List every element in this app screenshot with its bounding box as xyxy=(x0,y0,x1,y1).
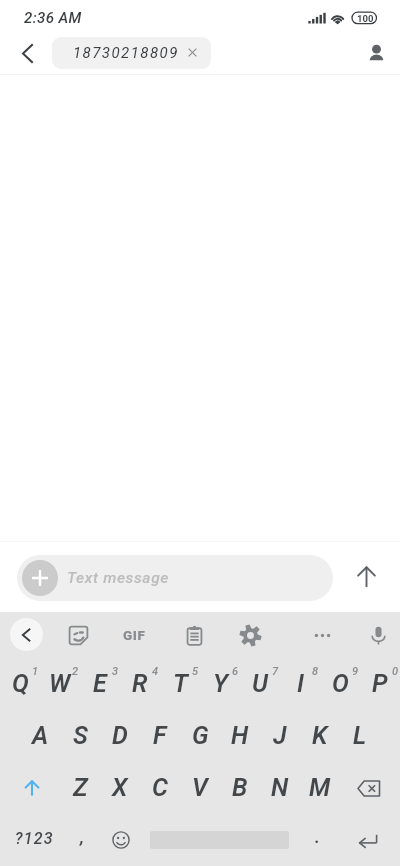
button[interactable]: Contact xyxy=(360,37,392,69)
button[interactable]: GIF xyxy=(112,612,156,658)
button[interactable]: Sticker xyxy=(56,612,100,658)
button[interactable]: V xyxy=(180,762,220,814)
staticText: V xyxy=(192,773,208,802)
button[interactable]: R xyxy=(120,658,160,710)
button[interactable]: Clipboard xyxy=(172,612,216,658)
button[interactable]: , xyxy=(62,814,102,866)
staticText: N xyxy=(271,773,289,802)
staticText: M xyxy=(309,773,331,802)
button[interactable]: Emoji xyxy=(101,814,141,866)
button[interactable]: A xyxy=(20,710,60,762)
button[interactable]: Settings xyxy=(228,612,272,658)
staticText: L xyxy=(353,721,367,750)
button[interactable]: B xyxy=(220,762,260,814)
staticText: 1 xyxy=(32,665,39,678)
staticText: J xyxy=(273,721,287,750)
button[interactable]: Send xyxy=(348,559,384,595)
staticText: K xyxy=(312,721,328,750)
button[interactable]: X xyxy=(100,762,140,814)
button[interactable]: . xyxy=(297,814,337,866)
staticText: 8 xyxy=(312,665,319,678)
button[interactable]: Voice input xyxy=(356,612,400,658)
staticText: 100 xyxy=(357,13,374,24)
staticText: 3 xyxy=(112,665,119,678)
staticText: GIF xyxy=(123,627,146,643)
button[interactable]: Q xyxy=(0,658,40,710)
staticText: 5 xyxy=(192,665,199,678)
button[interactable]: M xyxy=(300,762,340,814)
staticText: P xyxy=(372,669,388,698)
button[interactable]: D xyxy=(100,710,140,762)
button[interactable]: N xyxy=(260,762,300,814)
staticText: F xyxy=(153,721,167,750)
staticText: 2:36 AM xyxy=(24,9,82,27)
staticText: U xyxy=(252,669,268,698)
button[interactable]: O xyxy=(320,658,360,710)
button[interactable]: P xyxy=(360,658,400,710)
button[interactable]: Text message xyxy=(17,555,333,601)
staticText: ?123 xyxy=(15,829,54,848)
staticText: Q xyxy=(12,669,29,698)
button[interactable]: Collapse keyboard xyxy=(10,618,43,651)
staticText: W xyxy=(49,669,71,698)
staticText: Text message xyxy=(67,569,170,587)
staticText: 0 xyxy=(392,665,399,678)
button[interactable]: I xyxy=(280,658,320,710)
staticText: 7 xyxy=(272,665,279,678)
button[interactable]: L xyxy=(340,710,380,762)
staticText: , xyxy=(80,827,85,847)
staticText: R xyxy=(132,669,148,698)
button[interactable]: F xyxy=(140,710,180,762)
staticText: A xyxy=(32,721,49,750)
button[interactable]: Backspace xyxy=(340,762,400,814)
staticText: S xyxy=(73,721,88,750)
button[interactable]: More options xyxy=(300,612,344,658)
staticText: D xyxy=(112,721,128,750)
button[interactable]: G xyxy=(180,710,220,762)
staticText: Y xyxy=(213,669,228,698)
staticText: O xyxy=(332,669,349,698)
staticText: 6 xyxy=(232,665,239,678)
button[interactable]: Enter xyxy=(345,814,391,866)
button[interactable]: Z xyxy=(60,762,100,814)
staticText: . xyxy=(315,827,320,847)
button[interactable]: Shift xyxy=(0,762,60,814)
button[interactable]: E xyxy=(80,658,120,710)
button[interactable]: Back xyxy=(11,37,43,69)
staticText: E xyxy=(93,669,107,698)
staticText: T xyxy=(173,669,188,698)
staticText: H xyxy=(231,721,249,750)
button[interactable]: U xyxy=(240,658,280,710)
button[interactable]: Y xyxy=(200,658,240,710)
staticText: Z xyxy=(73,773,88,802)
button[interactable]: C xyxy=(140,762,180,814)
button[interactable]: ?123 xyxy=(3,814,59,866)
staticText: 2 xyxy=(72,665,79,678)
staticText: B xyxy=(232,773,248,802)
button[interactable]: 18730218809 xyxy=(52,37,211,69)
staticText: 9 xyxy=(352,665,359,678)
button[interactable]: W xyxy=(40,658,80,710)
button[interactable]: J xyxy=(260,710,300,762)
staticText: 18730218809 xyxy=(73,44,179,62)
button[interactable]: H xyxy=(220,710,260,762)
button[interactable]: K xyxy=(300,710,340,762)
staticText: C xyxy=(152,773,168,802)
staticText: 4 xyxy=(152,665,159,678)
button[interactable]: S xyxy=(60,710,100,762)
button[interactable]: T xyxy=(160,658,200,710)
button[interactable]: Space xyxy=(143,814,295,866)
staticText: X xyxy=(112,773,128,802)
staticText: G xyxy=(192,721,209,750)
staticText: I xyxy=(297,669,304,698)
